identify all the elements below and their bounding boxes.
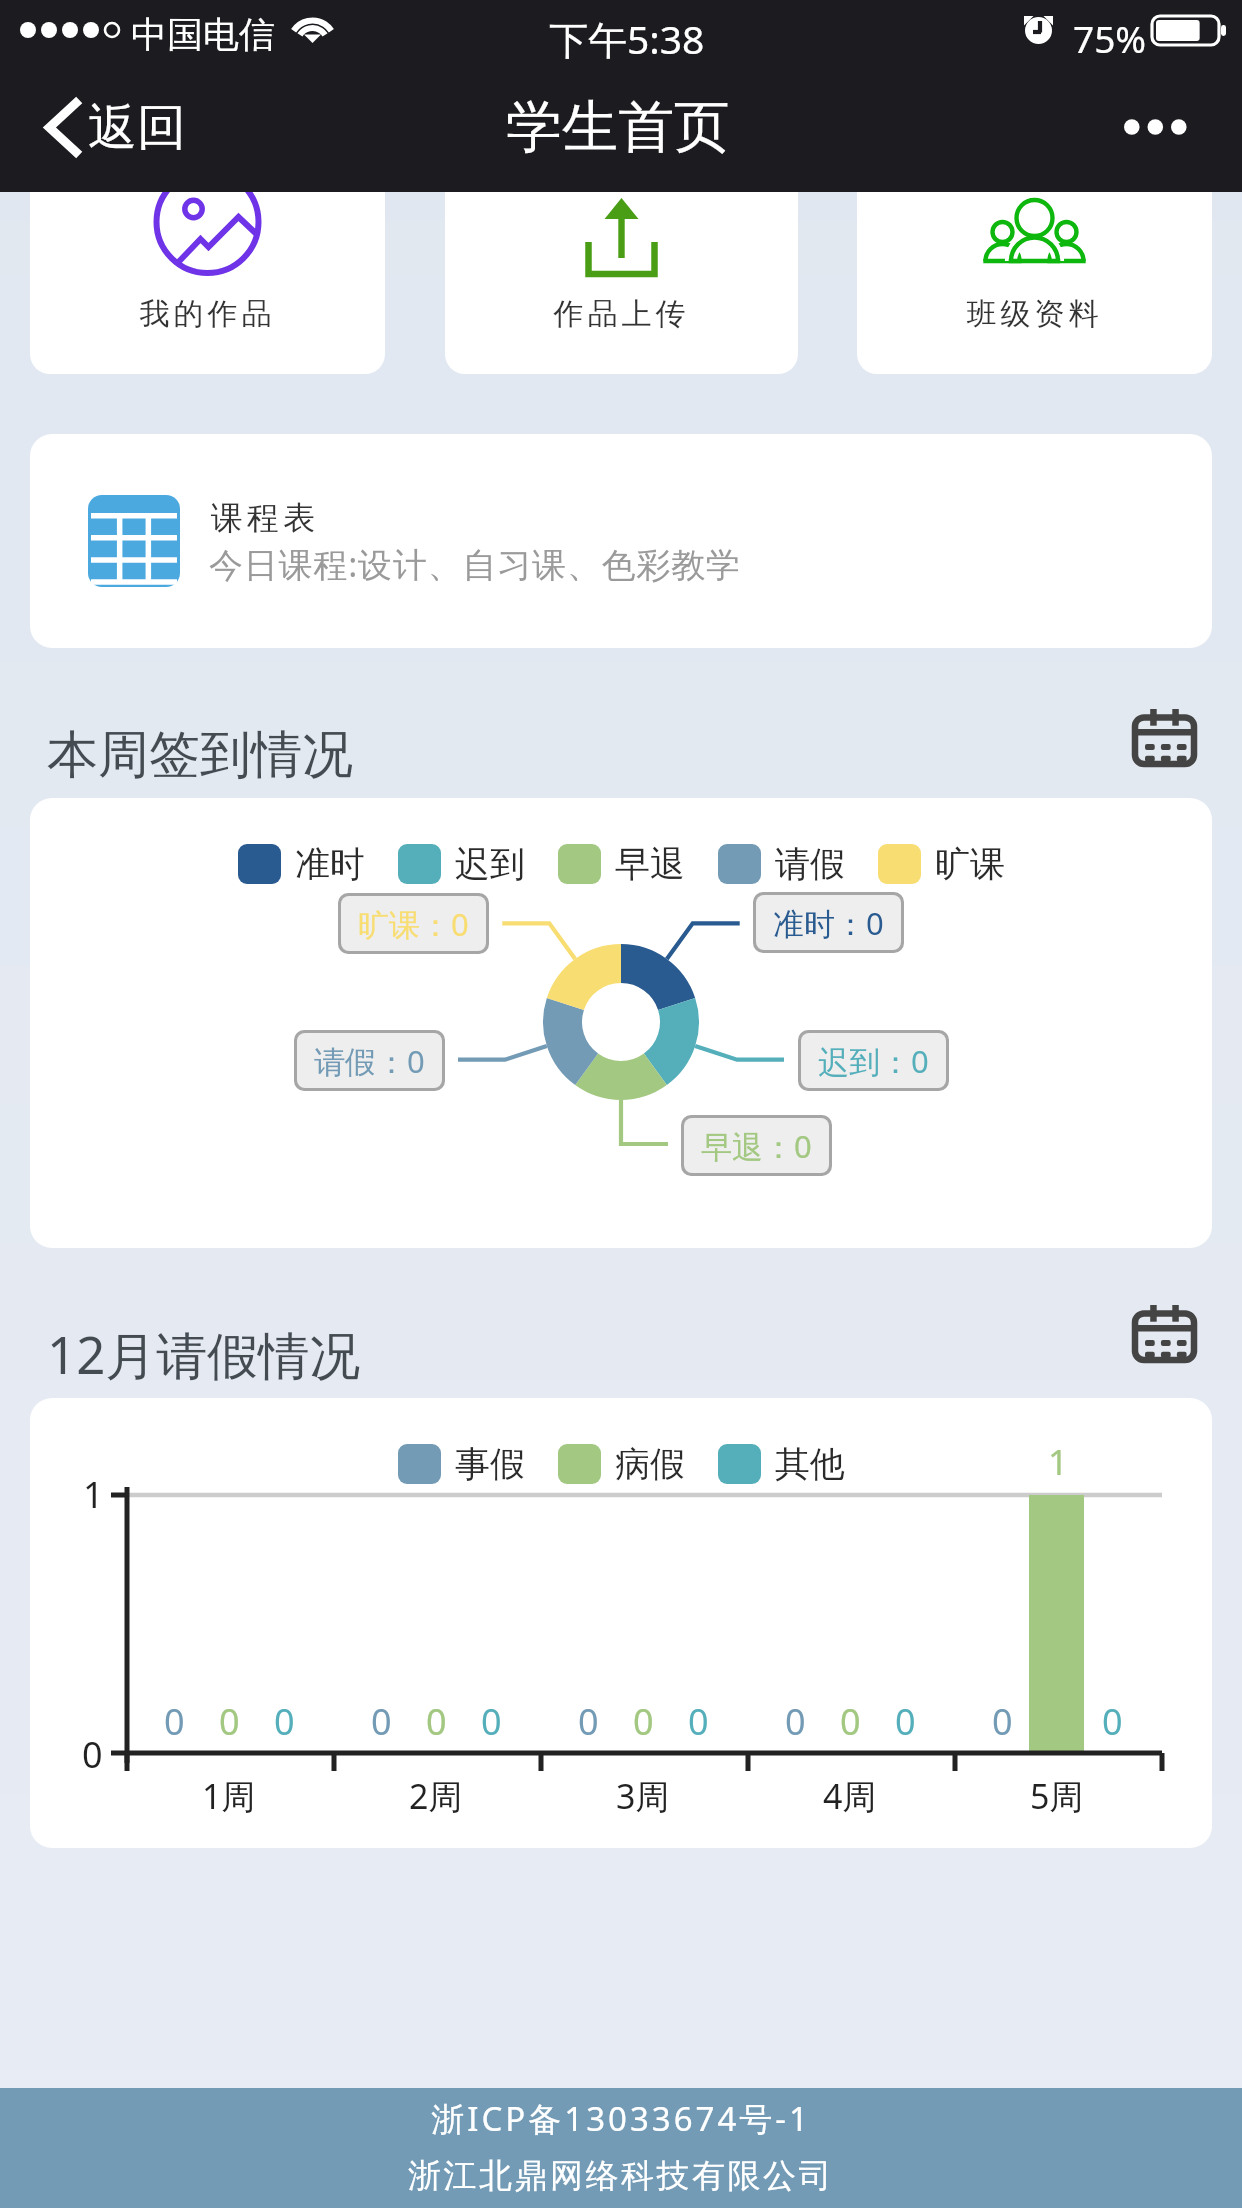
staticText: 病假 xyxy=(615,1442,685,1486)
staticText: 准时 xyxy=(295,842,365,886)
button[interactable]: 作品上传 xyxy=(445,150,798,374)
staticText: 0 xyxy=(274,1697,295,1746)
staticText: 我的作品 xyxy=(30,295,385,333)
staticText: 迟到 xyxy=(455,842,525,886)
staticText: 本周签到情况 xyxy=(47,723,353,787)
staticText: 0 xyxy=(1102,1697,1123,1746)
staticText: 0 xyxy=(785,1697,806,1746)
staticText: 早退 xyxy=(615,842,685,886)
staticText: 12月请假情况 xyxy=(47,1319,361,1389)
staticText: 0 xyxy=(840,1697,861,1746)
staticText: 0 xyxy=(164,1697,185,1746)
staticText: 课程表 xyxy=(209,498,317,538)
staticText: 事假 xyxy=(455,1442,525,1486)
staticText: 1 xyxy=(1048,1438,1069,1486)
button[interactable]: 准时 xyxy=(30,798,1212,1248)
button[interactable]: 课程表 xyxy=(30,434,1212,648)
staticText: 作品上传 xyxy=(445,295,798,333)
staticText: 今日课程:设计、自习课、色彩教学 xyxy=(209,541,741,587)
staticText: 0 xyxy=(688,1697,709,1746)
staticText: 75% xyxy=(1073,13,1147,63)
staticText: 0 xyxy=(578,1697,599,1746)
button[interactable]: Calendar xyxy=(1124,1296,1205,1371)
staticText: 1 xyxy=(83,1470,104,1519)
staticText: 准时：0 xyxy=(773,902,884,944)
button[interactable]: 事假 xyxy=(30,1398,1212,1848)
staticText: 早退：0 xyxy=(701,1125,812,1167)
button[interactable]: 返回 xyxy=(36,77,200,178)
staticText: 1周 xyxy=(202,1773,256,1819)
staticText: 0 xyxy=(219,1697,240,1746)
staticText: 学生首页 xyxy=(506,92,730,163)
button[interactable]: More options xyxy=(1110,105,1201,149)
staticText: 班级资料 xyxy=(857,295,1212,333)
staticText: 4周 xyxy=(823,1773,877,1819)
staticText: 5周 xyxy=(1030,1773,1084,1819)
staticText: 其他 xyxy=(775,1442,845,1486)
staticText: 0 xyxy=(82,1730,103,1779)
staticText: 中国电信 xyxy=(131,12,275,57)
staticText: 0 xyxy=(426,1697,447,1746)
staticText: 浙ICP备13033674号-1 xyxy=(0,2096,1242,2141)
staticText: 0 xyxy=(481,1697,502,1746)
staticText: 0 xyxy=(992,1697,1013,1746)
staticText: 旷课：0 xyxy=(358,903,469,945)
staticText: 下午5:38 xyxy=(549,12,705,65)
staticText: 迟到：0 xyxy=(818,1040,929,1082)
staticText: 2周 xyxy=(409,1773,463,1819)
button[interactable]: 我的作品 xyxy=(30,150,385,374)
staticText: 请假：0 xyxy=(314,1040,425,1082)
staticText: 0 xyxy=(371,1697,392,1746)
staticText: 返回 xyxy=(88,97,186,159)
staticText: 请假 xyxy=(775,842,845,886)
staticText: 0 xyxy=(895,1697,916,1746)
button[interactable]: 班级资料 xyxy=(857,150,1212,374)
staticText: 旷课 xyxy=(935,842,1005,886)
staticText: 0 xyxy=(633,1697,654,1746)
staticText: 浙江北鼎网络科技有限公司 xyxy=(0,2155,1242,2197)
button[interactable]: Calendar xyxy=(1124,700,1205,775)
staticText: 3周 xyxy=(616,1773,670,1819)
